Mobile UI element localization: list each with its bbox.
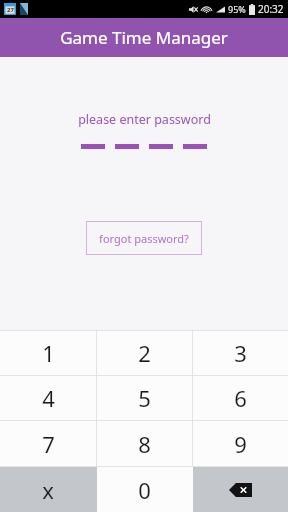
- staticText: 7: [42, 429, 55, 459]
- button[interactable]: 2: [97, 331, 192, 375]
- staticText: 20:32: [258, 2, 284, 16]
- button[interactable]: Backspace: [193, 467, 288, 512]
- button[interactable]: 4: [0, 376, 96, 420]
- staticText: 9: [234, 429, 247, 459]
- button[interactable]: 8: [97, 421, 192, 466]
- staticText: 0: [138, 475, 151, 505]
- button[interactable]: 0: [97, 467, 192, 512]
- staticText: x: [42, 475, 54, 505]
- staticText: 4: [42, 383, 55, 413]
- staticText: please enter password: [78, 111, 211, 128]
- staticText: 8: [138, 429, 151, 459]
- staticText: 6: [234, 383, 247, 413]
- button[interactable]: x: [0, 467, 96, 512]
- button[interactable]: 1: [0, 331, 96, 375]
- button[interactable]: 5: [97, 376, 192, 420]
- button[interactable]: 6: [193, 376, 288, 420]
- button[interactable]: 3: [193, 331, 288, 375]
- staticText: 5: [138, 383, 151, 413]
- staticText: 1: [42, 338, 55, 368]
- staticText: 95%: [228, 3, 246, 15]
- staticText: 2: [138, 338, 151, 368]
- button[interactable]: forgot password?: [86, 221, 202, 255]
- staticText: 27: [7, 6, 14, 14]
- button[interactable]: 9: [193, 421, 288, 466]
- staticText: Game Time Manager: [60, 26, 228, 49]
- button[interactable]: 7: [0, 421, 96, 466]
- staticText: 3: [234, 338, 247, 368]
- staticText: forgot password?: [99, 231, 189, 246]
